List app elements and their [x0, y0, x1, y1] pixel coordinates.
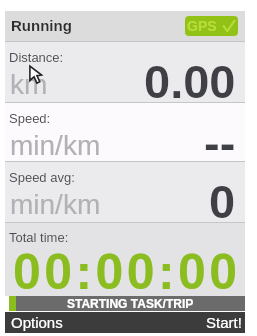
staticText: Start!	[206, 314, 242, 331]
staticText: Running	[11, 17, 72, 34]
button[interactable]: Start!	[125, 312, 245, 333]
staticText: min/km	[10, 130, 101, 161]
staticText: Distance:	[9, 50, 64, 65]
staticText: km	[10, 69, 48, 100]
button[interactable]: GPS signal acquired	[185, 16, 238, 36]
button[interactable]: Running	[5, 11, 245, 41]
staticText: Total time:	[9, 230, 69, 245]
staticText: 00:00:00	[13, 244, 241, 300]
staticText: Speed:	[9, 111, 51, 126]
staticText: STARTING TASK/TRIP	[67, 297, 194, 310]
staticText: min/km	[10, 189, 101, 220]
staticText: Options	[11, 314, 63, 331]
staticText: GPS	[187, 18, 217, 34]
staticText: 0	[209, 175, 236, 228]
staticText: 0.00	[144, 55, 236, 108]
staticText: --	[204, 116, 236, 169]
staticText: Speed avg:	[9, 170, 75, 185]
button[interactable]: Options	[5, 312, 125, 333]
